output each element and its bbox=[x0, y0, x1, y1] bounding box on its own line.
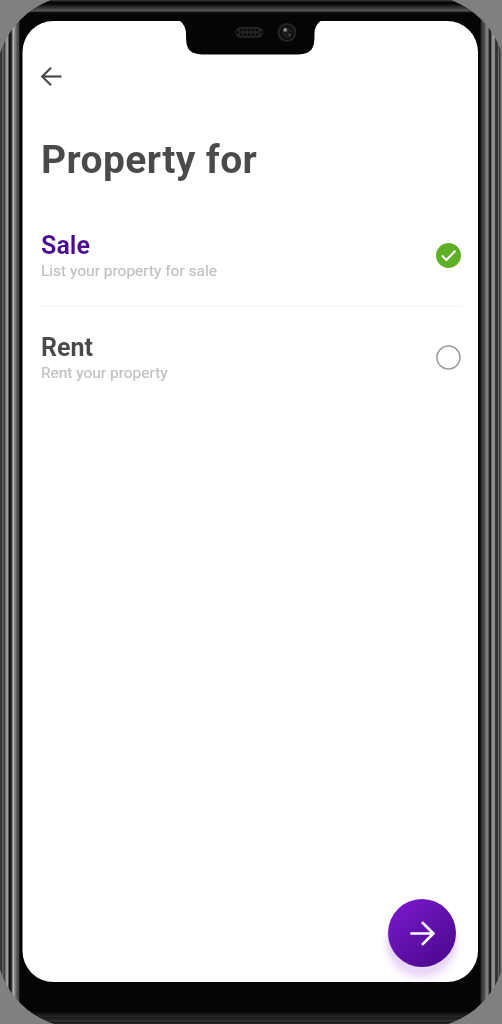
staticText: Rent bbox=[41, 333, 93, 362]
staticText: Sale bbox=[41, 231, 90, 260]
button[interactable]: Next bbox=[388, 899, 456, 967]
button[interactable]: Rent bbox=[0, 327, 502, 396]
staticText: List your property for sale bbox=[41, 262, 217, 280]
staticText: Rent your property bbox=[41, 364, 168, 382]
button[interactable]: Sale bbox=[0, 225, 502, 294]
button[interactable]: Back bbox=[30, 55, 72, 97]
staticText: Property for bbox=[41, 137, 258, 183]
